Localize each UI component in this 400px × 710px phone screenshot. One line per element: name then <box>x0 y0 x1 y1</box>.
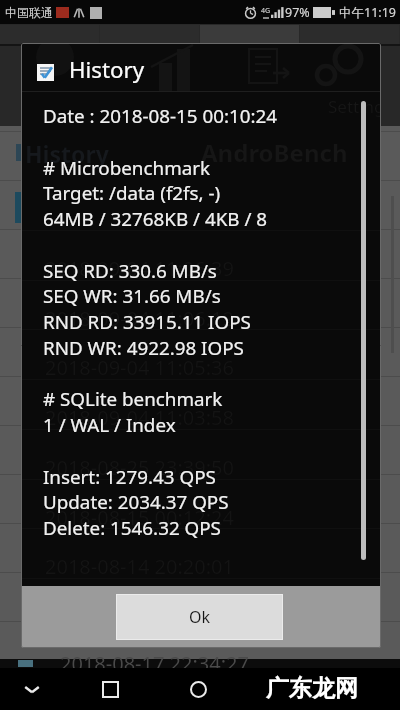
staticText: 2018-08-15 00:12:24 <box>45 504 234 531</box>
staticText: 广东龙网 <box>266 674 358 703</box>
staticText: 中国联通 <box>5 5 53 20</box>
button[interactable]: Ok <box>116 594 283 640</box>
button[interactable]: Home <box>178 668 218 710</box>
staticText: 2018-09-04 11:06:39 <box>45 255 234 282</box>
staticText: Target: /data (f2fs, -) <box>43 180 221 206</box>
staticText: History <box>25 138 109 169</box>
staticText: 中午11:19 <box>339 4 396 21</box>
staticText: # Microbenchmark <box>43 155 211 181</box>
staticText: # SQLite benchmark <box>43 386 223 412</box>
staticText: History <box>69 54 145 84</box>
staticText: RND RD: 33915.11 IOPS <box>43 309 251 335</box>
staticText: SEQ RD: 330.6 MB/s <box>43 258 217 284</box>
staticText: Update: 2034.37 QPS <box>43 489 229 515</box>
staticText: Settings <box>328 95 381 118</box>
staticText: Delete: 1546.32 QPS <box>43 515 221 541</box>
staticText: 2018-09-04 11:05:36 <box>45 354 234 381</box>
staticText: Insert: 1279.43 QPS <box>43 464 216 490</box>
staticText: AndroBench <box>201 136 348 169</box>
staticText: 64MB / 32768KB / 4KB / 8 <box>43 206 268 232</box>
staticText: 2018-08-17 22:34:27 <box>60 650 249 672</box>
staticText: 4G <box>261 6 271 16</box>
staticText: Date : 2018-08-15 00:10:24 <box>43 103 278 129</box>
staticText: SEQ WR: 31.66 MB/s <box>43 283 221 309</box>
staticText: 2018-09-04 11:03:58 <box>45 404 234 431</box>
button[interactable]: Recents <box>90 668 130 710</box>
button[interactable]: Back <box>12 668 52 710</box>
staticText: Ok <box>189 606 211 628</box>
staticText: 1 / WAL / Index <box>43 412 176 438</box>
staticText: 2018-08-25 23:39:50 <box>45 454 234 481</box>
staticText: 2018-09-04 11:06:12 <box>45 305 234 332</box>
staticText: 97% <box>285 4 310 21</box>
staticText: RND WR: 4922.98 IOPS <box>43 335 244 361</box>
